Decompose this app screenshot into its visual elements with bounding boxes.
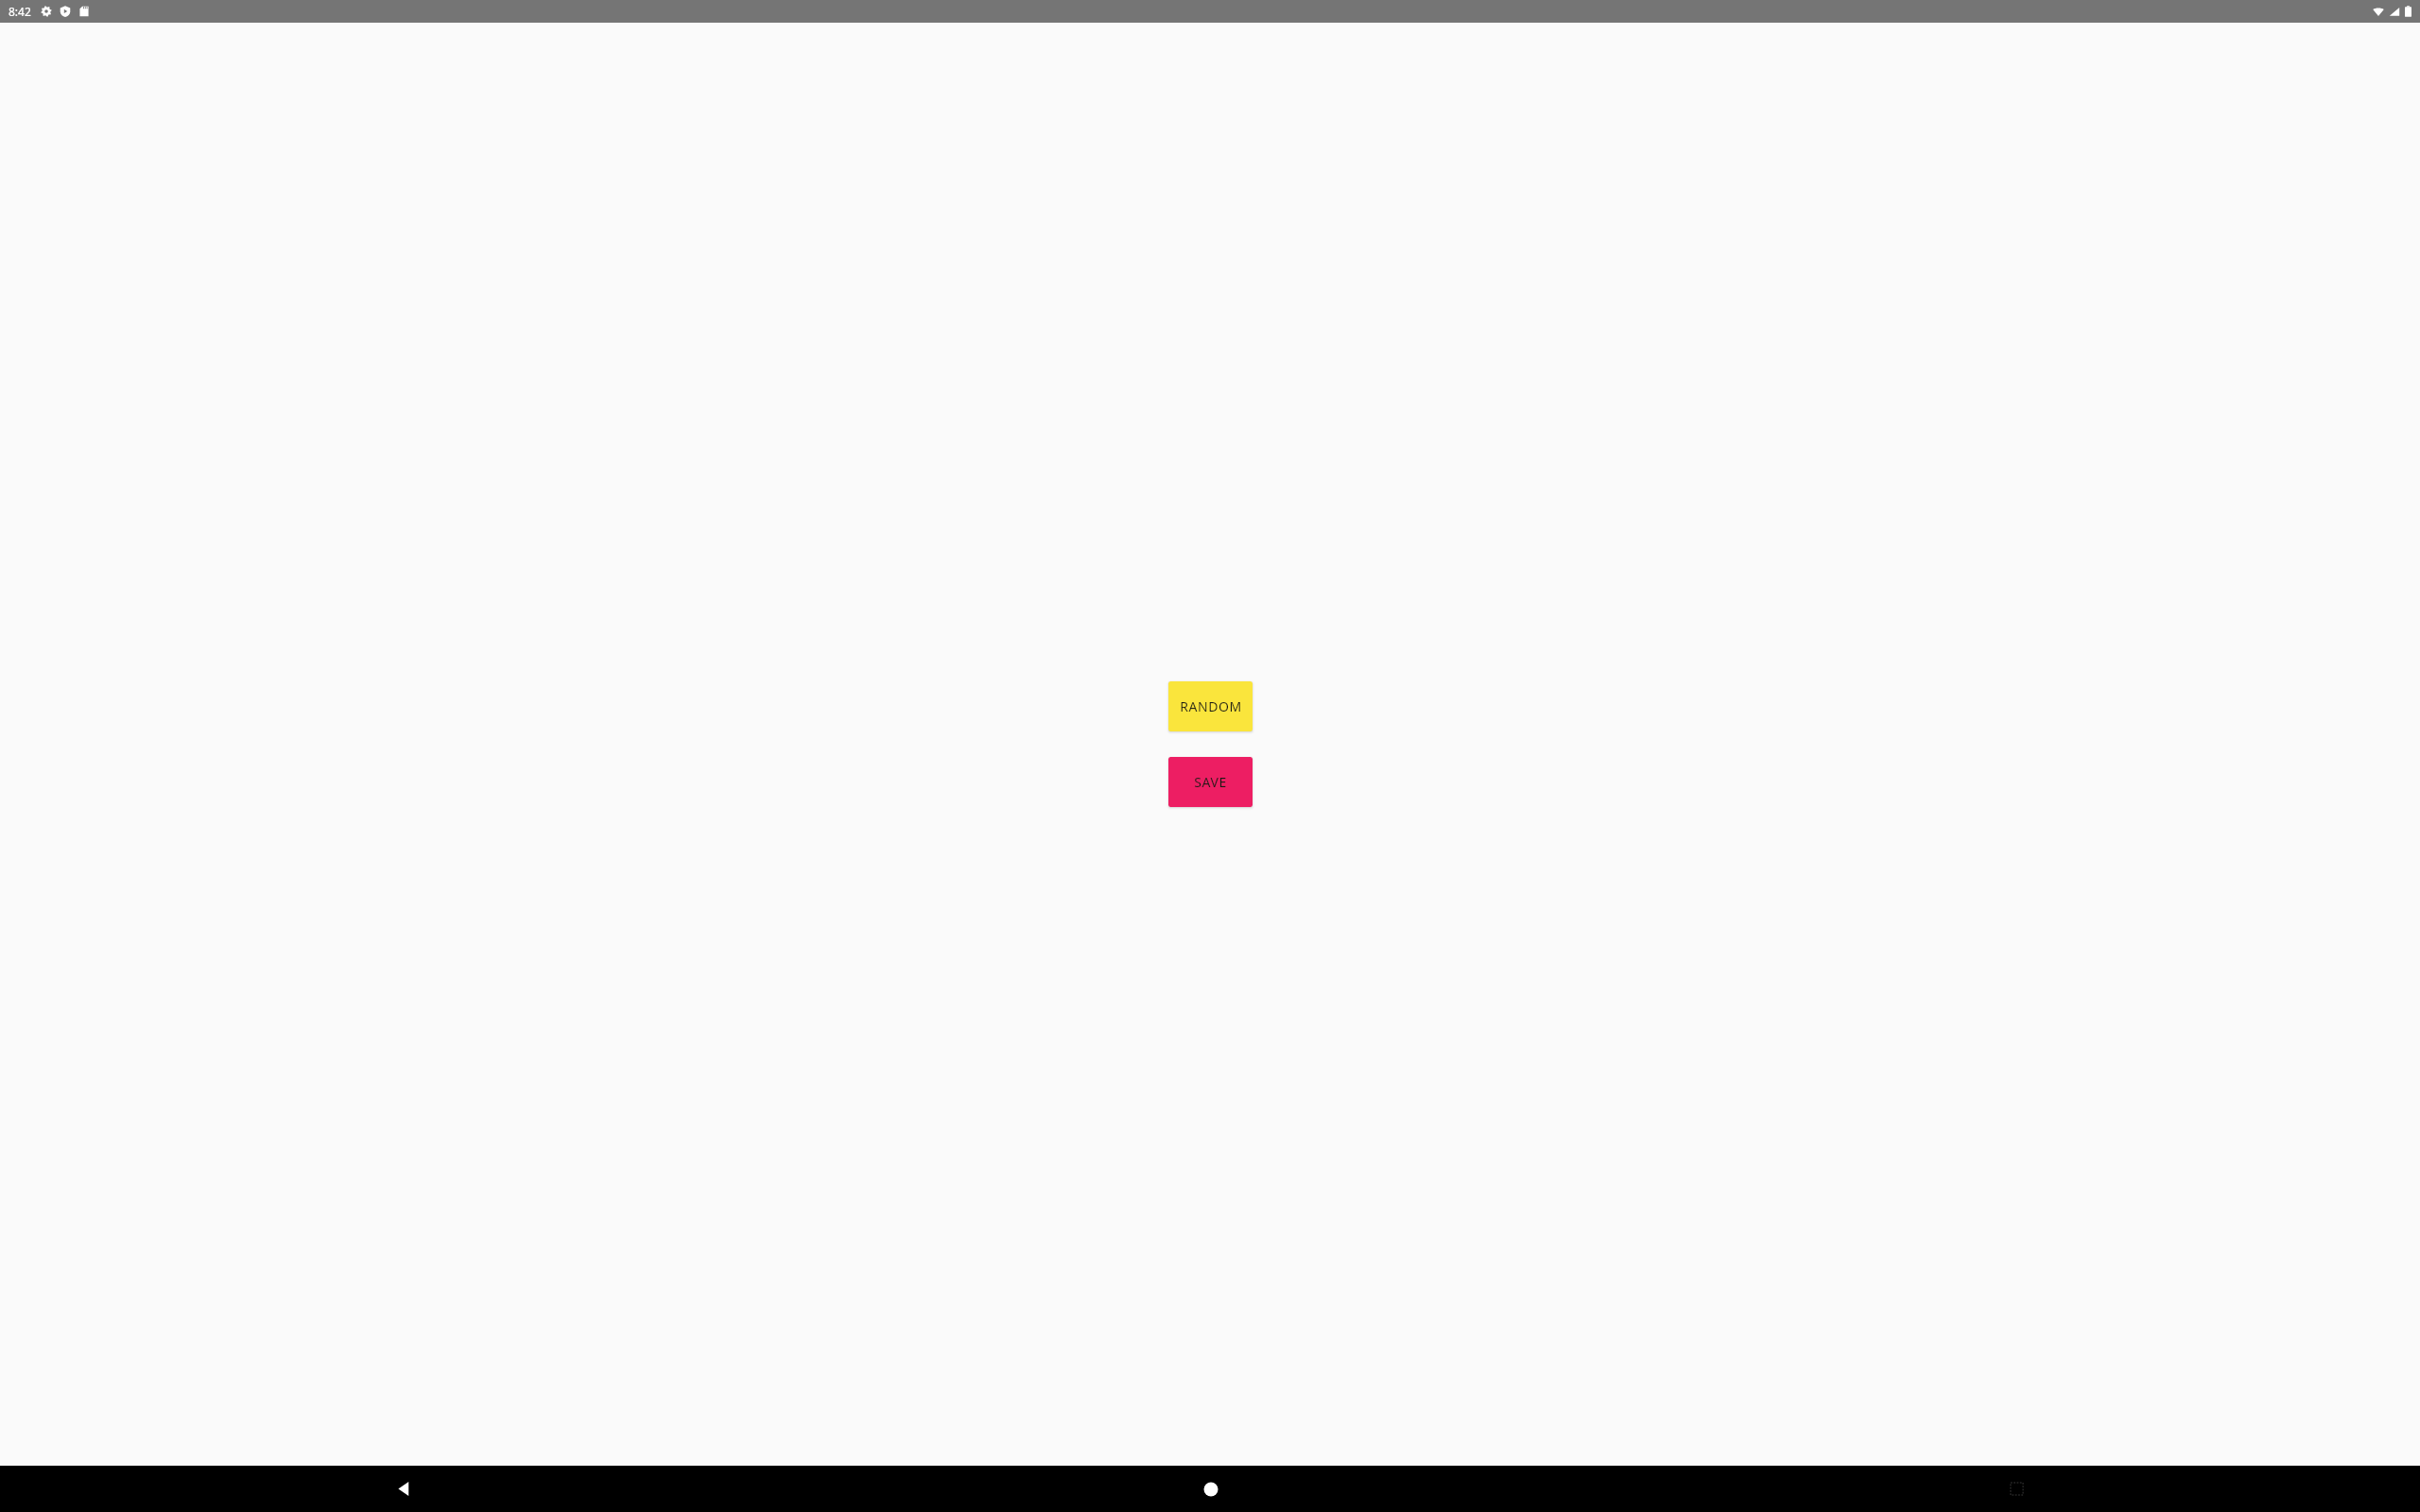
staticText: 8:42 xyxy=(9,4,31,19)
staticText: RANDOM xyxy=(1180,697,1242,715)
button[interactable]: RANDOM xyxy=(1168,681,1253,731)
button[interactable]: SAVE xyxy=(1168,757,1253,807)
button[interactable]: Home xyxy=(807,1466,1614,1512)
staticText: SAVE xyxy=(1194,773,1227,791)
button[interactable]: Back xyxy=(0,1466,807,1512)
